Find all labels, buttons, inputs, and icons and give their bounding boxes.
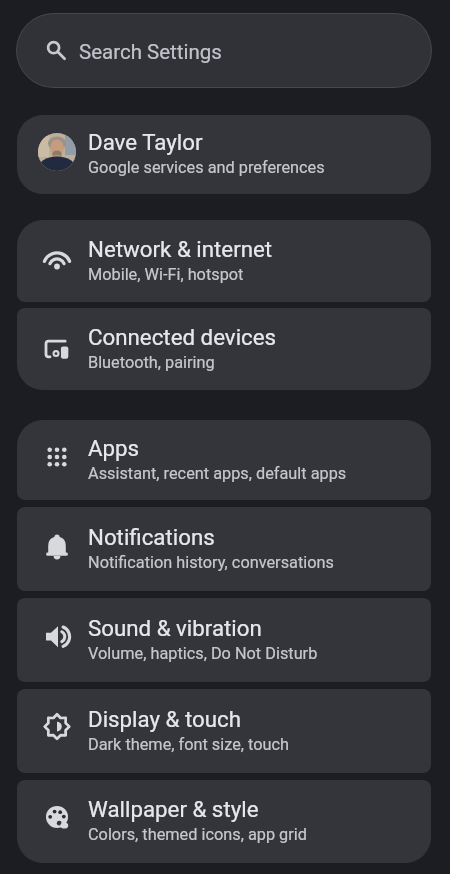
staticText: Dark theme, font size, touch <box>88 735 290 754</box>
button[interactable]: Apps <box>17 420 431 500</box>
button[interactable]: Connected devices <box>17 308 431 390</box>
staticText: Display & touch <box>88 706 241 732</box>
staticText: Volume, haptics, Do Not Disturb <box>88 644 318 663</box>
staticText: Apps <box>88 435 140 461</box>
button[interactable]: Sound & vibration <box>17 598 431 682</box>
staticText: Search Settings <box>79 40 222 64</box>
button[interactable]: Search Settings <box>16 13 432 88</box>
button[interactable]: Network & internet <box>17 220 431 302</box>
staticText: Sound & vibration <box>88 615 262 641</box>
button[interactable]: Dave Taylor <box>17 115 431 194</box>
staticText: Network & internet <box>88 236 273 262</box>
button[interactable]: Notifications <box>17 507 431 591</box>
staticText: Mobile, Wi-Fi, hotspot <box>88 265 244 284</box>
staticText: Wallpaper & style <box>88 796 259 822</box>
staticText: Notifications <box>88 524 215 550</box>
staticText: Bluetooth, pairing <box>88 353 215 372</box>
button[interactable]: Wallpaper & style <box>17 780 431 863</box>
staticText: Dave Taylor <box>88 129 203 155</box>
button[interactable]: Display & touch <box>17 689 431 773</box>
staticText: Google services and preferences <box>88 158 325 177</box>
staticText: Colors, themed icons, app grid <box>88 825 307 844</box>
staticText: Notification history, conversations <box>88 553 334 572</box>
staticText: Connected devices <box>88 324 277 350</box>
staticText: Assistant, recent apps, default apps <box>88 464 347 483</box>
